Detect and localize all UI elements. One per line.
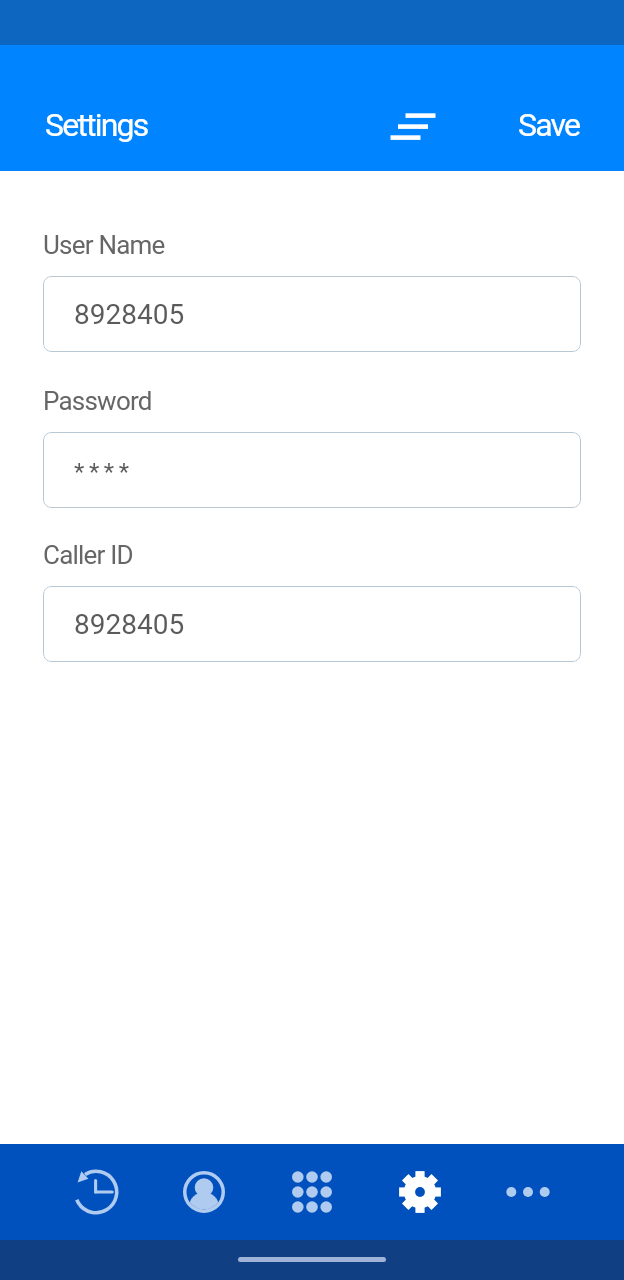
- staticText: ****: [74, 458, 134, 486]
- staticText: Caller ID: [43, 540, 133, 570]
- staticText: Save: [518, 106, 580, 144]
- button[interactable]: 8928405: [43, 586, 581, 662]
- staticText: Password: [43, 386, 152, 416]
- staticText: User Name: [43, 230, 165, 260]
- staticText: 8928405: [74, 298, 185, 331]
- button[interactable]: Recent calls: [42, 1144, 150, 1240]
- button[interactable]: Settings: [366, 1144, 474, 1240]
- button[interactable]: Contacts: [150, 1144, 258, 1240]
- button[interactable]: ****: [43, 432, 581, 508]
- staticText: Settings: [45, 106, 148, 144]
- button[interactable]: Save: [504, 96, 594, 154]
- button[interactable]: Sort: [381, 94, 445, 158]
- button[interactable]: More options: [474, 1144, 582, 1240]
- button[interactable]: Dialpad: [258, 1144, 366, 1240]
- button[interactable]: 8928405: [43, 276, 581, 352]
- staticText: 8928405: [74, 608, 185, 641]
